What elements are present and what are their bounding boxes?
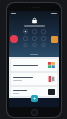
button[interactable]: Deliveries	[51, 36, 58, 43]
button[interactable]	[11, 59, 57, 71]
button[interactable]	[11, 73, 57, 85]
button[interactable]: Alerts	[10, 35, 18, 43]
button[interactable]	[11, 87, 57, 96]
button[interactable]: Add	[31, 95, 38, 102]
